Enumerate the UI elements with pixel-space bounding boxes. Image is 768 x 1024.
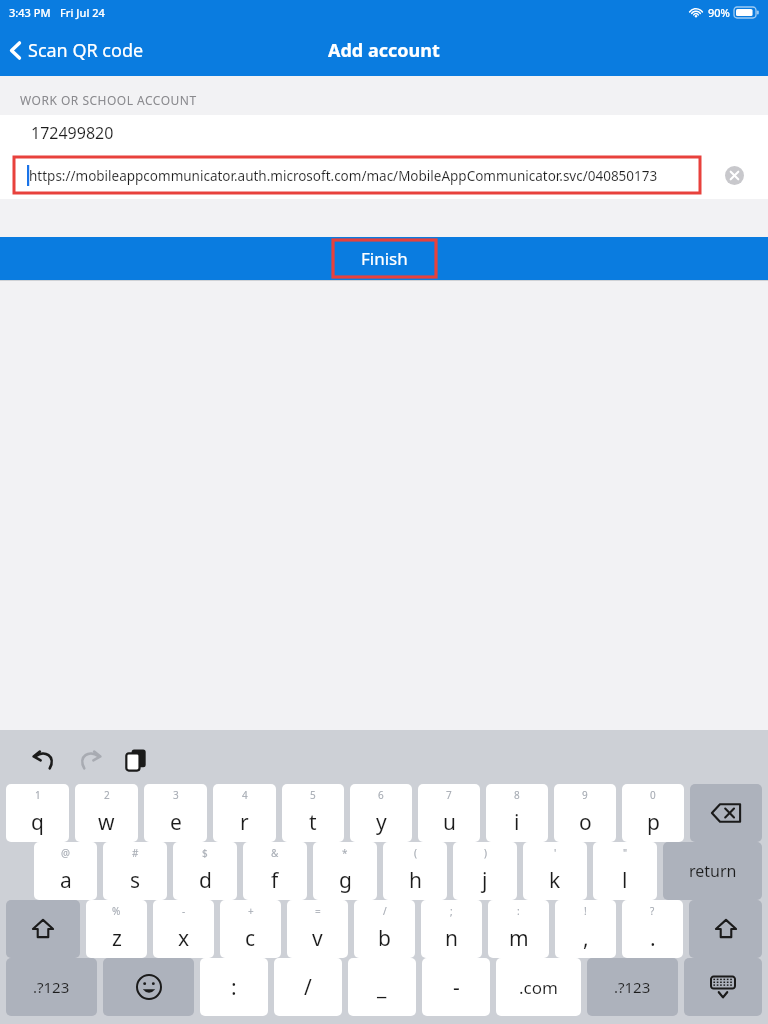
staticText: g	[339, 866, 352, 895]
staticText: 3	[173, 788, 179, 802]
staticText: r	[240, 808, 249, 837]
button[interactable]: (	[383, 842, 447, 900]
button[interactable]: @	[34, 842, 97, 900]
staticText: (	[414, 846, 417, 860]
button[interactable]: 1	[6, 784, 69, 842]
button[interactable]: :	[488, 900, 549, 958]
staticText: +	[248, 904, 254, 918]
staticText: e	[170, 808, 182, 837]
staticText: 3:43 PM	[9, 5, 51, 20]
button[interactable]: "	[593, 842, 657, 900]
staticText: .?123	[614, 977, 651, 997]
button[interactable]: _	[348, 958, 416, 1016]
button[interactable]: Redo	[68, 738, 112, 782]
staticText: i	[514, 808, 520, 837]
button[interactable]: .?123	[587, 958, 678, 1016]
button[interactable]: 0	[622, 784, 684, 842]
staticText: a	[60, 866, 72, 895]
button[interactable]: Emoji	[103, 958, 194, 1016]
button[interactable]: #	[103, 842, 167, 900]
button[interactable]: Undo	[22, 738, 66, 782]
staticText: k	[549, 866, 561, 895]
button[interactable]: ?	[622, 900, 683, 958]
staticText: f	[271, 866, 279, 895]
button[interactable]: Hide keyboard	[684, 958, 762, 1016]
staticText: t	[309, 808, 317, 837]
staticText: 7	[446, 788, 452, 802]
staticText: !	[584, 904, 587, 918]
staticText: 9	[582, 788, 588, 802]
button[interactable]: /	[354, 900, 415, 958]
staticText: '	[554, 846, 557, 860]
button[interactable]: Paste	[114, 738, 158, 782]
button[interactable]: Scan QR code	[0, 30, 158, 71]
staticText: :	[231, 973, 237, 1002]
staticText: ,	[583, 924, 589, 953]
button[interactable]: .com	[496, 958, 581, 1016]
staticText: -	[453, 973, 460, 1002]
button[interactable]: )	[453, 842, 517, 900]
staticText: j	[482, 866, 488, 895]
button[interactable]: *	[313, 842, 377, 900]
button[interactable]: 172499820	[0, 115, 768, 151]
button[interactable]: %	[86, 900, 147, 958]
staticText: n	[445, 924, 458, 953]
button[interactable]: '	[523, 842, 587, 900]
staticText: 172499820	[31, 122, 114, 144]
staticText: WORK OR SCHOOL ACCOUNT	[20, 92, 197, 108]
button[interactable]: /	[274, 958, 342, 1016]
staticText: 0	[650, 788, 656, 802]
staticText: %	[112, 904, 121, 918]
button[interactable]: !	[555, 900, 616, 958]
staticText: :	[517, 904, 520, 918]
button[interactable]: +	[220, 900, 281, 958]
staticText: _	[377, 973, 387, 1002]
staticText: c	[245, 924, 256, 953]
staticText: /	[383, 904, 387, 918]
button[interactable]: 5	[282, 784, 344, 842]
button[interactable]: =	[287, 900, 348, 958]
button[interactable]: -	[153, 900, 214, 958]
button[interactable]: Shift	[689, 900, 762, 958]
staticText: Scan QR code	[28, 38, 144, 63]
staticText: /	[304, 973, 312, 1002]
button[interactable]: &	[243, 842, 307, 900]
staticText: 2	[104, 788, 110, 802]
button[interactable]: Clear text	[700, 151, 768, 199]
button[interactable]: 8	[486, 784, 548, 842]
button[interactable]: Backspace	[690, 784, 762, 842]
button[interactable]: 6	[350, 784, 412, 842]
button[interactable]: 9	[554, 784, 616, 842]
button[interactable]: :	[200, 958, 268, 1016]
staticText: Fri Jul 24	[60, 5, 105, 20]
staticText: .com	[519, 976, 558, 999]
button[interactable]: 2	[75, 784, 138, 842]
staticText: @	[61, 846, 70, 860]
staticText: z	[112, 924, 122, 953]
staticText: s	[130, 866, 141, 895]
staticText: b	[378, 924, 391, 953]
staticText: 6	[378, 788, 384, 802]
staticText: "	[623, 846, 628, 860]
button[interactable]: return	[663, 842, 762, 900]
staticText: Add account	[328, 38, 440, 63]
staticText: .?123	[33, 977, 70, 997]
staticText: &	[271, 846, 279, 860]
staticText: https://mobileappcommunicator.auth.micro…	[29, 167, 658, 185]
button[interactable]: 3	[144, 784, 207, 842]
button[interactable]: -	[422, 958, 490, 1016]
staticText: 4	[242, 788, 248, 802]
button[interactable]: https://mobileappcommunicator.auth.micro…	[0, 151, 700, 199]
button[interactable]: Finish	[0, 237, 768, 280]
button[interactable]: 7	[418, 784, 480, 842]
staticText: x	[178, 924, 190, 953]
staticText: )	[484, 846, 487, 860]
button[interactable]: .?123	[6, 958, 97, 1016]
staticText: ;	[450, 904, 453, 918]
staticText: 5	[310, 788, 316, 802]
staticText: u	[443, 808, 456, 837]
button[interactable]: ;	[421, 900, 482, 958]
button[interactable]: Shift	[6, 900, 80, 958]
button[interactable]: $	[173, 842, 237, 900]
button[interactable]: 4	[213, 784, 276, 842]
